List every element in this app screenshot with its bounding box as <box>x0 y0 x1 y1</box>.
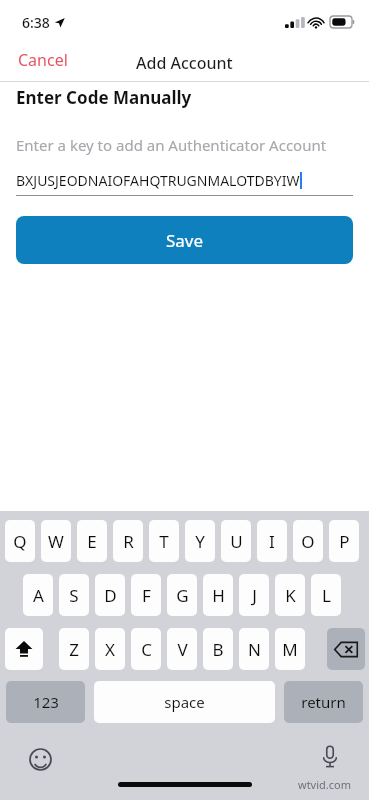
button[interactable]: Shift <box>5 628 43 670</box>
staticText: O <box>301 530 315 553</box>
staticText: BXJUSJEODNAIOFAHQTRUGNMALOTDBYIW <box>16 171 300 190</box>
button[interactable]: O <box>293 520 323 562</box>
button[interactable]: Cancel <box>14 46 72 74</box>
staticText: I <box>269 530 275 553</box>
staticText: Enter Code Manually <box>16 86 192 109</box>
staticText: H <box>212 584 225 607</box>
button[interactable]: U <box>221 520 251 562</box>
button[interactable]: J <box>239 574 269 616</box>
button[interactable]: S <box>59 574 89 616</box>
staticText: K <box>285 584 296 607</box>
button[interactable]: Q <box>5 520 35 562</box>
button[interactable]: C <box>131 628 161 670</box>
button[interactable]: I <box>257 520 287 562</box>
staticText: T <box>159 530 169 553</box>
staticText: G <box>176 584 189 607</box>
staticText: Add Account <box>136 52 233 74</box>
staticText: V <box>177 638 188 661</box>
button[interactable]: G <box>167 574 197 616</box>
button[interactable]: Dictation <box>315 742 345 772</box>
staticText: M <box>282 638 298 661</box>
staticText: 123 <box>33 692 59 712</box>
staticText: wtvid.com <box>298 777 351 792</box>
staticText: Q <box>13 530 27 553</box>
button[interactable]: Emoji keyboard <box>25 744 55 774</box>
button[interactable]: B <box>203 628 233 670</box>
staticText: return <box>301 692 346 712</box>
staticText: W <box>48 530 64 553</box>
button[interactable]: H <box>203 574 233 616</box>
button[interactable]: Z <box>59 628 89 670</box>
staticText: L <box>322 584 331 607</box>
button[interactable]: 123 <box>6 681 85 723</box>
button[interactable]: return <box>284 681 363 723</box>
staticText: space <box>164 692 205 712</box>
button[interactable]: A <box>23 574 53 616</box>
staticText: X <box>105 638 115 661</box>
button[interactable]: Y <box>185 520 215 562</box>
button[interactable]: W <box>41 520 71 562</box>
button[interactable]: N <box>239 628 269 670</box>
staticText: C <box>141 638 152 661</box>
staticText: Cancel <box>18 49 68 71</box>
button[interactable]: X <box>95 628 125 670</box>
staticText: B <box>212 638 224 661</box>
button[interactable]: space <box>94 681 275 723</box>
staticText: Save <box>166 229 204 252</box>
staticText: U <box>230 530 243 553</box>
staticText: E <box>87 530 97 553</box>
staticText: Z <box>69 638 79 661</box>
button[interactable]: M <box>275 628 305 670</box>
button[interactable]: K <box>275 574 305 616</box>
staticText: P <box>339 530 350 553</box>
staticText: Y <box>195 530 205 553</box>
staticText: Enter a key to add an Authenticator Acco… <box>16 135 327 155</box>
staticText: A <box>33 584 44 607</box>
button[interactable]: P <box>329 520 359 562</box>
button[interactable]: E <box>77 520 107 562</box>
button[interactable]: T <box>149 520 179 562</box>
staticText: J <box>252 584 257 607</box>
button[interactable]: Save <box>16 216 353 264</box>
staticText: F <box>142 584 151 607</box>
button[interactable]: L <box>311 574 341 616</box>
button[interactable]: D <box>95 574 125 616</box>
staticText: S <box>69 584 79 607</box>
button[interactable]: F <box>131 574 161 616</box>
button[interactable]: R <box>113 520 143 562</box>
staticText: 6:38 <box>22 13 50 32</box>
staticText: N <box>248 638 261 661</box>
button[interactable]: V <box>167 628 197 670</box>
staticText: D <box>104 584 117 607</box>
staticText: R <box>123 530 134 553</box>
button[interactable]: Backspace <box>327 628 365 670</box>
